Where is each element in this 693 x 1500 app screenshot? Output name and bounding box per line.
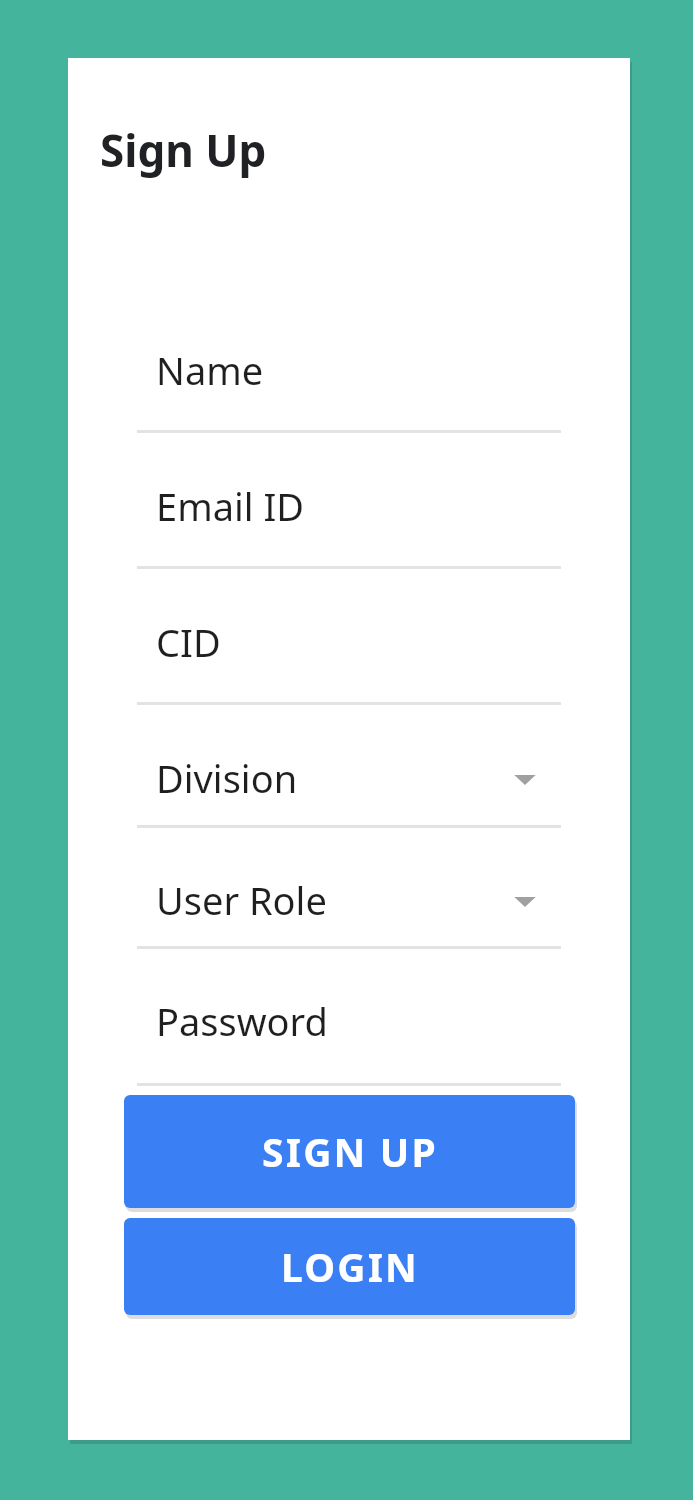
button[interactable]: Password bbox=[137, 975, 561, 1083]
button[interactable]: SIGN UP bbox=[124, 1095, 575, 1208]
staticText: Password bbox=[156, 995, 328, 1043]
staticText: Sign Up bbox=[100, 120, 267, 180]
button[interactable]: LOGIN bbox=[124, 1218, 575, 1315]
other: Open User Role list bbox=[512, 894, 538, 910]
staticText: Email ID bbox=[156, 480, 305, 528]
button[interactable]: Name bbox=[137, 324, 561, 430]
button[interactable]: CID bbox=[137, 596, 561, 702]
button[interactable]: Email ID bbox=[137, 460, 561, 566]
other: Open Division list bbox=[512, 772, 538, 788]
button[interactable]: User Role bbox=[137, 854, 561, 946]
staticText: LOGIN bbox=[281, 1240, 419, 1293]
staticText: CID bbox=[156, 616, 221, 664]
staticText: Division bbox=[156, 752, 298, 800]
staticText: SIGN UP bbox=[262, 1125, 438, 1178]
staticText: Name bbox=[156, 344, 264, 392]
button[interactable]: Division bbox=[137, 732, 561, 825]
staticText: User Role bbox=[156, 874, 327, 922]
